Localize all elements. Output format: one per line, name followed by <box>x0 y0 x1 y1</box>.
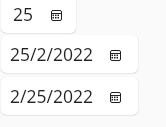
button[interactable]: Show date picker <box>47 6 65 24</box>
staticText: 2/25/2022 <box>10 84 94 108</box>
staticText: 25 <box>13 2 34 26</box>
button[interactable]: Show date picker <box>106 46 124 64</box>
staticText: 25/2/2022 <box>10 42 94 66</box>
button[interactable]: Show date picker <box>106 88 124 106</box>
button[interactable]: 25 <box>1 0 76 33</box>
button[interactable]: 25/2/2022 <box>1 35 138 73</box>
button[interactable]: 2/25/2022 <box>1 77 138 115</box>
